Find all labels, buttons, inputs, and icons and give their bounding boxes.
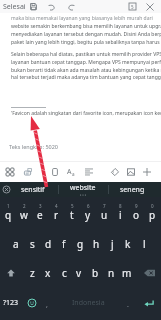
staticText: Selesai bbox=[3, 2, 26, 12]
staticText: 1 bbox=[7, 203, 10, 209]
button[interactable]: seneng bbox=[107, 182, 157, 197]
staticText: layanan bantuan cepat tanggap. Mengapa V… bbox=[11, 59, 161, 66]
button[interactable]: c bbox=[56, 260, 72, 286]
button[interactable]: 6 bbox=[80, 202, 96, 228]
button[interactable]: l bbox=[136, 231, 152, 257]
staticText: j bbox=[111, 237, 114, 251]
button[interactable]: z bbox=[24, 260, 40, 286]
staticText: s bbox=[30, 237, 35, 251]
button[interactable]: f bbox=[56, 231, 72, 257]
staticText: 5 bbox=[71, 203, 74, 209]
staticText: z bbox=[30, 266, 35, 280]
staticText: b bbox=[92, 266, 99, 280]
button[interactable]: 8 bbox=[112, 202, 128, 228]
staticText: sensitif bbox=[21, 185, 45, 195]
staticText: k bbox=[125, 237, 131, 251]
button[interactable]: b bbox=[87, 260, 103, 286]
button[interactable]: Save bbox=[26, 0, 40, 13]
button[interactable]: , bbox=[40, 290, 54, 316]
button[interactable]: Emoji bbox=[24, 290, 40, 316]
button[interactable]: Print bbox=[21, 162, 35, 182]
staticText: , bbox=[46, 300, 48, 310]
button[interactable]: m bbox=[119, 260, 135, 286]
button[interactable]: 1 bbox=[0, 202, 16, 228]
button[interactable]: Redo bbox=[64, 0, 78, 13]
staticText: a bbox=[13, 237, 19, 251]
staticText: 5 bbox=[131, 4, 134, 10]
button[interactable]: n bbox=[103, 260, 119, 286]
button[interactable]: Undo bbox=[45, 0, 59, 13]
staticText: g bbox=[77, 237, 84, 251]
staticText: p bbox=[149, 208, 156, 222]
button[interactable]: 4 bbox=[48, 202, 64, 228]
button[interactable]: h bbox=[88, 231, 104, 257]
button[interactable]: 7 bbox=[96, 202, 112, 228]
staticText: o bbox=[133, 208, 140, 222]
button[interactable]: a bbox=[8, 231, 24, 257]
button[interactable]: Paragraph bbox=[82, 162, 96, 182]
staticText: a bbox=[72, 171, 75, 177]
staticText: 3 bbox=[39, 203, 42, 209]
staticText: seneng bbox=[120, 185, 145, 195]
staticText: y bbox=[85, 208, 91, 222]
staticText: paket lain yang lebih tinggi, begitu pul… bbox=[11, 39, 161, 46]
button[interactable]: . bbox=[121, 290, 135, 316]
staticText: . bbox=[127, 300, 129, 310]
button[interactable]: Highlight bbox=[108, 162, 122, 182]
staticText: ?123 bbox=[3, 298, 19, 308]
button[interactable]: Backspace bbox=[137, 260, 161, 286]
staticText: 'Favicon adalah singkatan dari favorite … bbox=[11, 110, 161, 117]
staticText: maka bisa memakai layanan yang biasanya … bbox=[11, 15, 153, 22]
staticText: h bbox=[93, 237, 100, 251]
staticText: A bbox=[67, 167, 72, 177]
staticText: website bbox=[70, 183, 96, 193]
staticText: m bbox=[122, 266, 132, 280]
staticText: 9 bbox=[135, 203, 138, 209]
button[interactable]: Close bbox=[143, 0, 157, 13]
button[interactable]: x bbox=[40, 260, 56, 286]
staticText: f bbox=[62, 237, 66, 251]
staticText: u bbox=[101, 208, 108, 222]
button[interactable]: j bbox=[104, 231, 120, 257]
button[interactable]: 5 bbox=[64, 202, 80, 228]
staticText: n bbox=[108, 266, 115, 280]
button[interactable]: 2 bbox=[16, 202, 32, 228]
button[interactable]: ?123 bbox=[0, 290, 22, 316]
staticText: website semakin berkembang bisa memilih … bbox=[11, 23, 161, 30]
button[interactable]: Selesai bbox=[3, 0, 30, 13]
staticText: Indonesia bbox=[72, 298, 105, 308]
staticText: r bbox=[54, 208, 59, 222]
button[interactable]: Shift bbox=[0, 260, 23, 286]
staticText: t bbox=[70, 208, 74, 222]
button[interactable]: s bbox=[24, 231, 40, 257]
button[interactable]: d bbox=[40, 231, 56, 257]
button[interactable]: Insert bbox=[140, 162, 154, 182]
button[interactable]: Apps bbox=[3, 162, 17, 182]
staticText: l bbox=[143, 237, 146, 251]
staticText: e bbox=[37, 208, 43, 222]
button[interactable]: website bbox=[58, 182, 108, 197]
staticText: 6 bbox=[87, 203, 90, 209]
button[interactable]: 9 bbox=[128, 202, 144, 228]
staticText: hal tersebut terjadi maka adanya tim ban… bbox=[11, 74, 161, 81]
staticText: q bbox=[5, 208, 12, 222]
staticText: 0 bbox=[151, 203, 154, 209]
staticText: bukan berarti tidak akan ada masalah ata… bbox=[11, 67, 161, 74]
button[interactable]: Indonesia bbox=[55, 290, 121, 316]
button[interactable]: k bbox=[120, 231, 136, 257]
button[interactable]: Pages bbox=[125, 0, 139, 13]
button[interactable]: v bbox=[71, 260, 87, 286]
staticText: v bbox=[76, 266, 82, 280]
button[interactable]: Dismiss suggestions bbox=[0, 182, 12, 197]
staticText: 7 bbox=[103, 203, 106, 209]
button[interactable]: Text style bbox=[64, 162, 78, 182]
staticText: w bbox=[20, 208, 28, 222]
button[interactable]: g bbox=[72, 231, 88, 257]
button[interactable]: 3 bbox=[32, 202, 48, 228]
button[interactable]: 0 bbox=[144, 202, 160, 228]
button[interactable]: Page layout bbox=[48, 162, 62, 182]
button[interactable]: Insert image bbox=[124, 162, 138, 182]
staticText: menyediakan layanan tersebut dengan muda… bbox=[11, 31, 161, 38]
button[interactable]: Enter bbox=[136, 290, 160, 316]
button[interactable]: sensitif bbox=[8, 182, 58, 197]
